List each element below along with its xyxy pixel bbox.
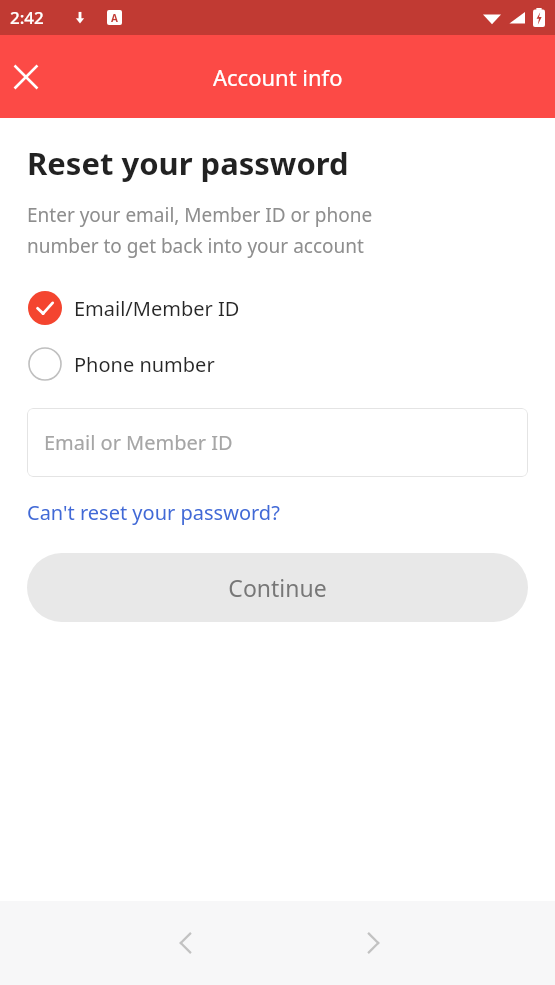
staticText: Account info [213,62,343,92]
button[interactable]: Close [4,55,48,99]
staticText: Phone number [74,351,215,378]
staticText: Email/Member ID [74,295,240,322]
button[interactable]: Can't reset your password? [27,499,280,526]
staticText: Can't reset your password? [27,499,280,526]
button[interactable]: Back [163,920,209,966]
button[interactable]: Forward [350,920,396,966]
staticText: 2:42 [10,6,44,29]
button[interactable]: Phone number [27,346,528,382]
button[interactable]: Email or Member ID [27,408,528,477]
staticText: Enter your email, Member ID or phone num… [27,202,373,258]
button[interactable]: Continue [27,553,528,622]
staticText: Email or Member ID [44,429,233,456]
staticText: Reset your password [27,142,349,184]
staticText: A [111,11,118,25]
staticText: Continue [228,572,327,603]
button[interactable]: Email/Member ID [27,290,528,326]
